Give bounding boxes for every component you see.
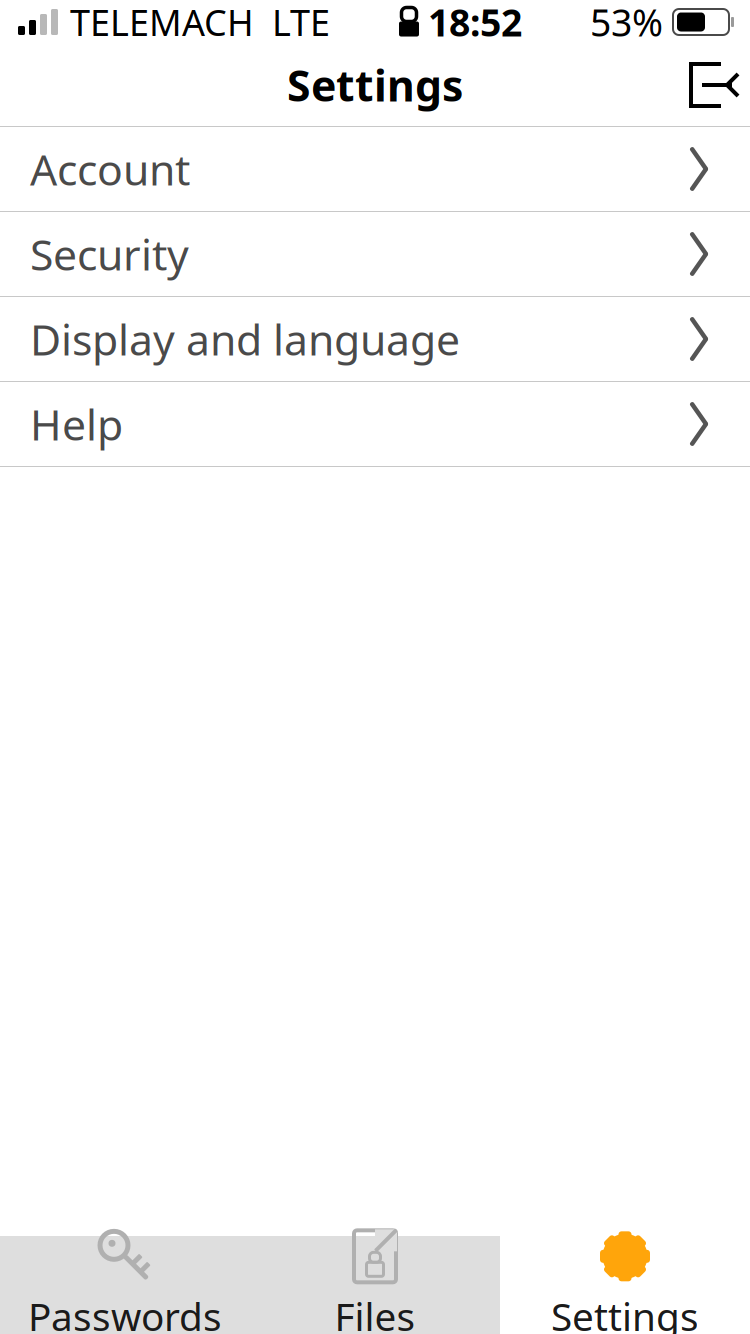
button[interactable]: Files bbox=[250, 1236, 500, 1334]
button[interactable]: Settings bbox=[500, 1236, 750, 1334]
staticText: Security bbox=[30, 226, 189, 282]
staticText: 53% bbox=[590, 0, 663, 47]
staticText: Account bbox=[30, 141, 190, 197]
staticText: Files bbox=[334, 1290, 415, 1334]
staticText: TELEMACH bbox=[70, 0, 254, 46]
button[interactable]: Log out bbox=[678, 49, 750, 121]
staticText: 18:52 bbox=[428, 0, 522, 47]
staticText: Settings bbox=[287, 57, 463, 113]
button[interactable]: Account bbox=[0, 127, 750, 211]
button[interactable]: Security bbox=[0, 212, 750, 296]
button[interactable]: Display and language bbox=[0, 297, 750, 381]
staticText: Help bbox=[30, 396, 123, 452]
staticText: Passwords bbox=[28, 1290, 222, 1334]
staticText: Settings bbox=[551, 1290, 699, 1334]
button[interactable]: Passwords bbox=[0, 1236, 250, 1334]
staticText: LTE bbox=[272, 0, 330, 46]
staticText: Display and language bbox=[30, 311, 460, 367]
button[interactable]: Help bbox=[0, 382, 750, 466]
